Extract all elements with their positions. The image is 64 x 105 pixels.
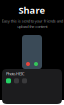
staticText: Easy this is send to your friends and up… [1,18,62,29]
staticText: Share [18,4,45,16]
staticText: Photo.HEIC [6,71,25,76]
